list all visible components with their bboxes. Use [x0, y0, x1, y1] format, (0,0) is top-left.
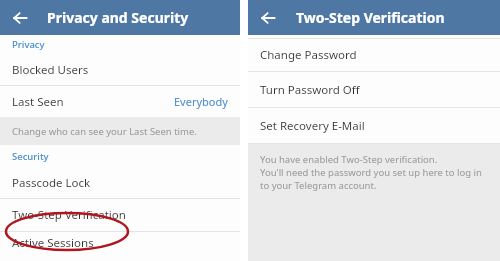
button[interactable]: Last Seen [0, 86, 240, 117]
button[interactable]: Back [255, 5, 281, 31]
staticText: Privacy [12, 38, 45, 51]
button[interactable]: Two-Step Verification [0, 199, 240, 231]
staticText: Privacy and Security [47, 8, 189, 27]
staticText: You have enabled Two-Step verification. … [260, 153, 482, 192]
staticText: Two-Step Verification [296, 8, 445, 27]
staticText: Turn Password Off [260, 82, 360, 98]
button[interactable]: Blocked Users [0, 54, 240, 85]
staticText: Blocked Users [12, 62, 89, 78]
staticText: Passcode Lock [12, 175, 91, 191]
staticText: Everybody [174, 94, 228, 109]
staticText: Set Recovery E-Mail [260, 118, 365, 134]
button[interactable]: Active Sessions [0, 232, 240, 254]
staticText: Change Password [260, 47, 357, 63]
button[interactable]: Change Password [248, 39, 500, 71]
button[interactable]: Set Recovery E-Mail [248, 108, 500, 143]
button[interactable]: Passcode Lock [0, 168, 240, 198]
button[interactable]: Back [7, 5, 33, 31]
staticText: Last Seen [12, 94, 64, 110]
staticText: Two-Step Verification [12, 207, 126, 223]
staticText: Change who can see your Last Seen time. [12, 125, 197, 138]
staticText: Active Sessions [12, 235, 94, 251]
button[interactable]: Turn Password Off [248, 72, 500, 107]
staticText: Security [12, 150, 49, 163]
